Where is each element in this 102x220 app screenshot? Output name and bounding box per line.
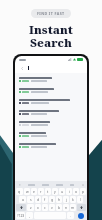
- button[interactable]: f: [42, 196, 48, 203]
- button[interactable]: [19, 130, 83, 141]
- button[interactable]: Shift: [16, 204, 26, 211]
- button[interactable]: l: [77, 196, 83, 203]
- button[interactable]: j: [63, 196, 69, 203]
- button[interactable]: h: [56, 196, 62, 203]
- staticText: k: [72, 197, 74, 202]
- button[interactable]: i: [66, 188, 72, 195]
- button[interactable]: ?123: [16, 212, 25, 219]
- button[interactable]: o: [73, 188, 79, 195]
- button[interactable]: z: [27, 204, 34, 211]
- button[interactable]: t: [45, 188, 51, 195]
- button[interactable]: x: [35, 204, 41, 211]
- staticText: m: [71, 205, 75, 210]
- staticText: w: [26, 189, 29, 194]
- staticText: f: [44, 197, 46, 202]
- staticText: q: [18, 189, 21, 194]
- button[interactable]: y: [52, 188, 58, 195]
- button[interactable]: More: [81, 183, 84, 186]
- staticText: j: [66, 197, 67, 202]
- button[interactable]: [19, 119, 83, 130]
- staticText: b: [58, 205, 61, 210]
- button[interactable]: [19, 108, 83, 119]
- button[interactable]: [19, 75, 83, 86]
- button[interactable]: q: [16, 188, 23, 195]
- staticText: h: [58, 197, 61, 202]
- staticText: .: [70, 213, 71, 218]
- button[interactable]: e: [31, 188, 37, 195]
- staticText: a: [22, 197, 24, 202]
- staticText: u: [61, 189, 64, 194]
- button[interactable]: [19, 97, 83, 108]
- button[interactable]: FIND IT FAST: [31, 9, 71, 18]
- staticText: t: [47, 189, 49, 194]
- button[interactable]: k: [70, 196, 76, 203]
- button[interactable]: g: [49, 196, 55, 203]
- staticText: FIND IT FAST: [37, 11, 65, 16]
- button[interactable]: .: [67, 212, 74, 219]
- button[interactable]: n: [63, 204, 69, 211]
- button[interactable]: Keyboard options: [18, 183, 21, 186]
- staticText: ,: [29, 213, 30, 218]
- staticText: ?123: [17, 213, 25, 218]
- staticText: p: [82, 189, 85, 194]
- button[interactable]: [28, 65, 83, 71]
- staticText: v: [51, 205, 53, 210]
- staticText: o: [75, 189, 78, 194]
- button[interactable]: [19, 141, 83, 152]
- button[interactable]: Search: [75, 212, 86, 219]
- button[interactable]: ,: [26, 212, 33, 219]
- button[interactable]: c: [42, 204, 48, 211]
- button[interactable]: u: [59, 188, 65, 195]
- staticText: c: [44, 205, 46, 210]
- button[interactable]: r: [38, 188, 44, 195]
- button[interactable]: b: [56, 204, 62, 211]
- staticText: e: [33, 189, 35, 194]
- staticText: z: [30, 205, 32, 210]
- staticText: i: [69, 189, 70, 194]
- button[interactable]: d: [35, 196, 41, 203]
- button[interactable]: s: [27, 196, 34, 203]
- button[interactable]: w: [24, 188, 30, 195]
- staticText: x: [37, 205, 39, 210]
- staticText: r: [40, 189, 42, 194]
- button[interactable]: Back: [19, 65, 25, 71]
- button[interactable]: a: [19, 196, 26, 203]
- button[interactable]: v: [49, 204, 55, 211]
- staticText: s: [30, 197, 32, 202]
- button[interactable]: Backspace: [77, 204, 86, 211]
- staticText: n: [65, 205, 68, 210]
- button[interactable]: m: [70, 204, 76, 211]
- staticText: Instant Search: [29, 22, 73, 50]
- staticText: d: [37, 197, 40, 202]
- button[interactable]: p: [80, 188, 86, 195]
- staticText: y: [54, 189, 56, 194]
- staticText: l: [80, 197, 81, 202]
- staticText: g: [51, 197, 54, 202]
- button[interactable]: [19, 86, 83, 97]
